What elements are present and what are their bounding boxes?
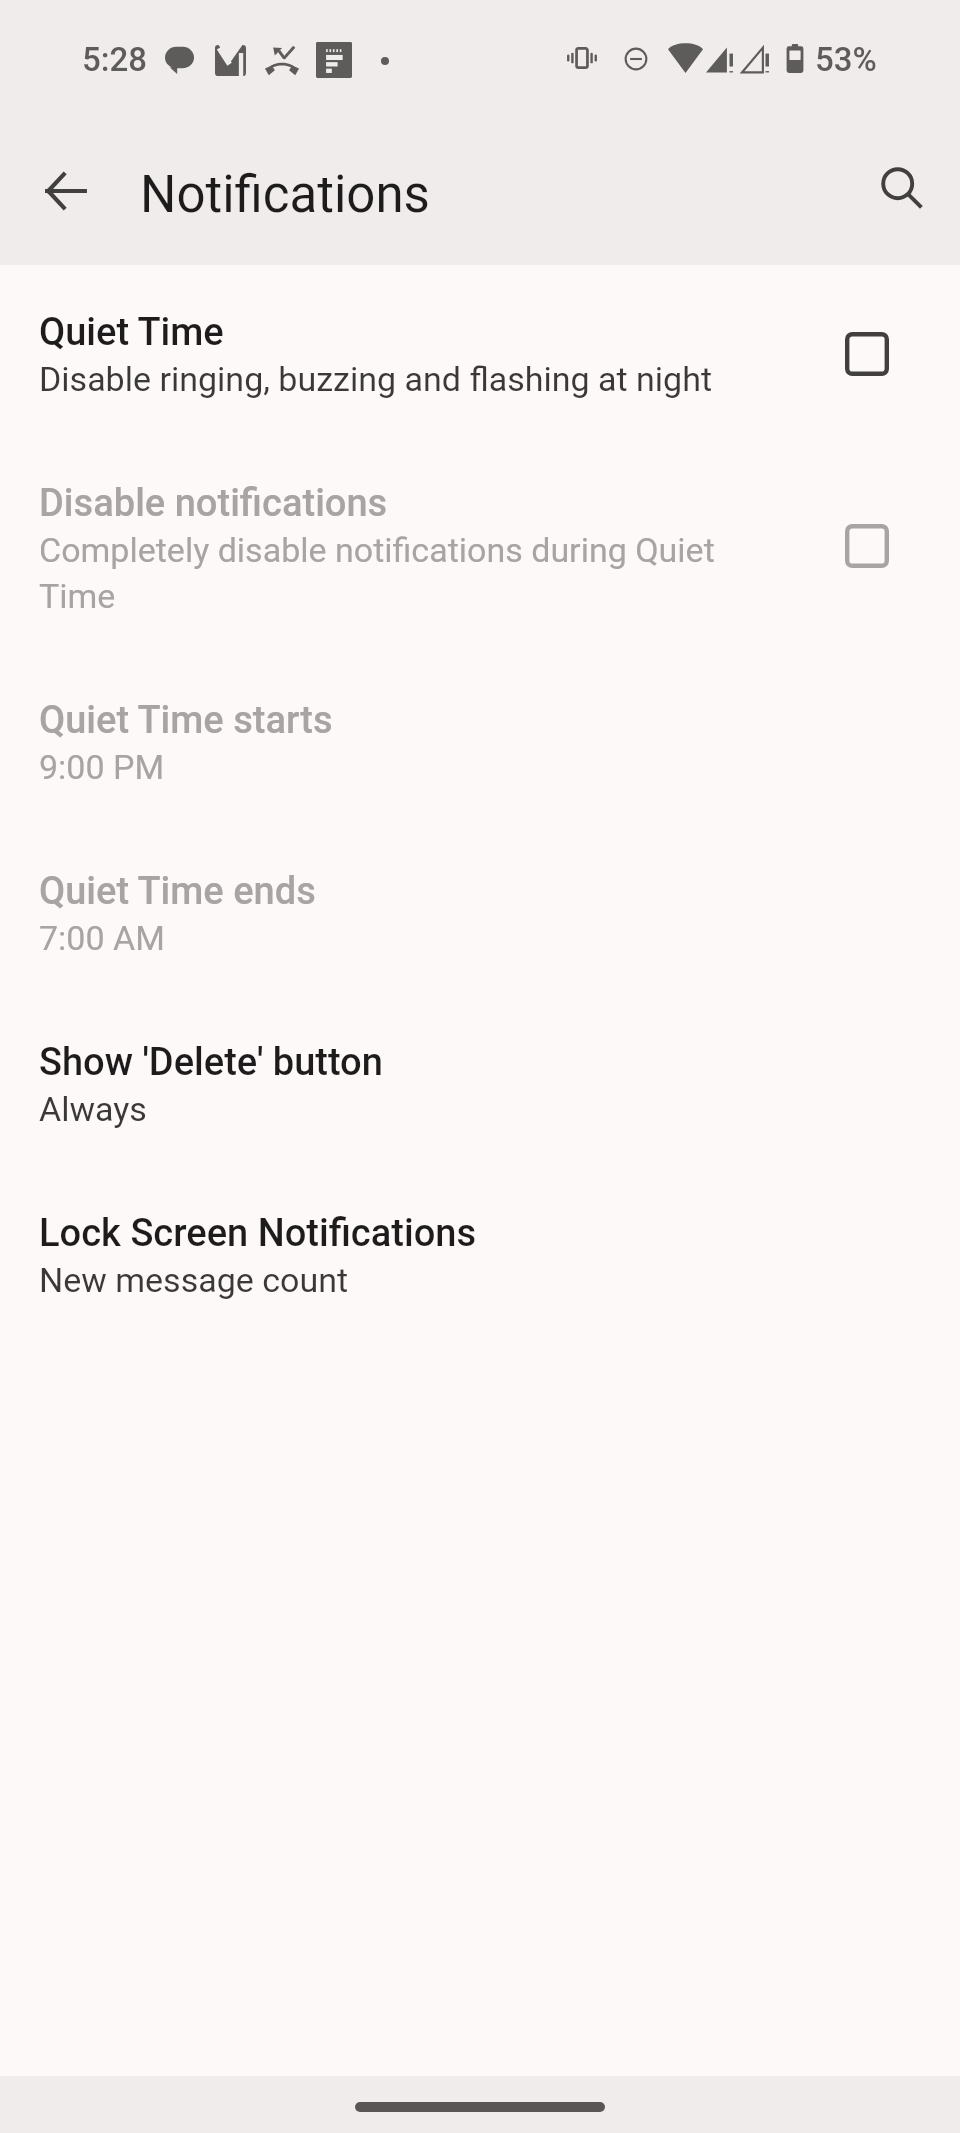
button[interactable]: Quiet Time bbox=[829, 316, 905, 392]
button[interactable]: Search bbox=[859, 145, 947, 233]
staticText: Always bbox=[39, 1089, 147, 1129]
staticText: 5:28 bbox=[82, 40, 148, 79]
staticText: Notifications bbox=[140, 165, 430, 225]
staticText: Show 'Delete' button bbox=[39, 1040, 383, 1085]
staticText: 53% bbox=[815, 40, 877, 79]
staticText: Completely disable notifications during … bbox=[39, 530, 719, 617]
staticText: New message count bbox=[39, 1260, 349, 1300]
staticText: Disable notifications bbox=[39, 481, 388, 526]
button[interactable]: Back bbox=[22, 147, 110, 235]
button[interactable]: Quiet Time ends bbox=[0, 845, 960, 1016]
staticText: Quiet Time starts bbox=[39, 698, 333, 743]
staticText: 7:00 AM bbox=[39, 918, 165, 958]
staticText: 9:00 PM bbox=[39, 747, 165, 787]
button[interactable]: Disable notifications bbox=[0, 457, 960, 674]
button[interactable]: Lock Screen Notifications bbox=[0, 1187, 960, 1358]
staticText: Quiet Time bbox=[39, 310, 224, 355]
staticText: Lock Screen Notifications bbox=[39, 1211, 477, 1256]
staticText: Disable ringing, buzzing and flashing at… bbox=[39, 359, 713, 399]
button[interactable]: Disable notifications bbox=[829, 508, 905, 584]
staticText: Quiet Time ends bbox=[39, 869, 316, 914]
button[interactable]: Show 'Delete' button bbox=[0, 1016, 960, 1187]
button[interactable]: Quiet Time bbox=[0, 286, 960, 457]
button[interactable]: Quiet Time starts bbox=[0, 674, 960, 845]
